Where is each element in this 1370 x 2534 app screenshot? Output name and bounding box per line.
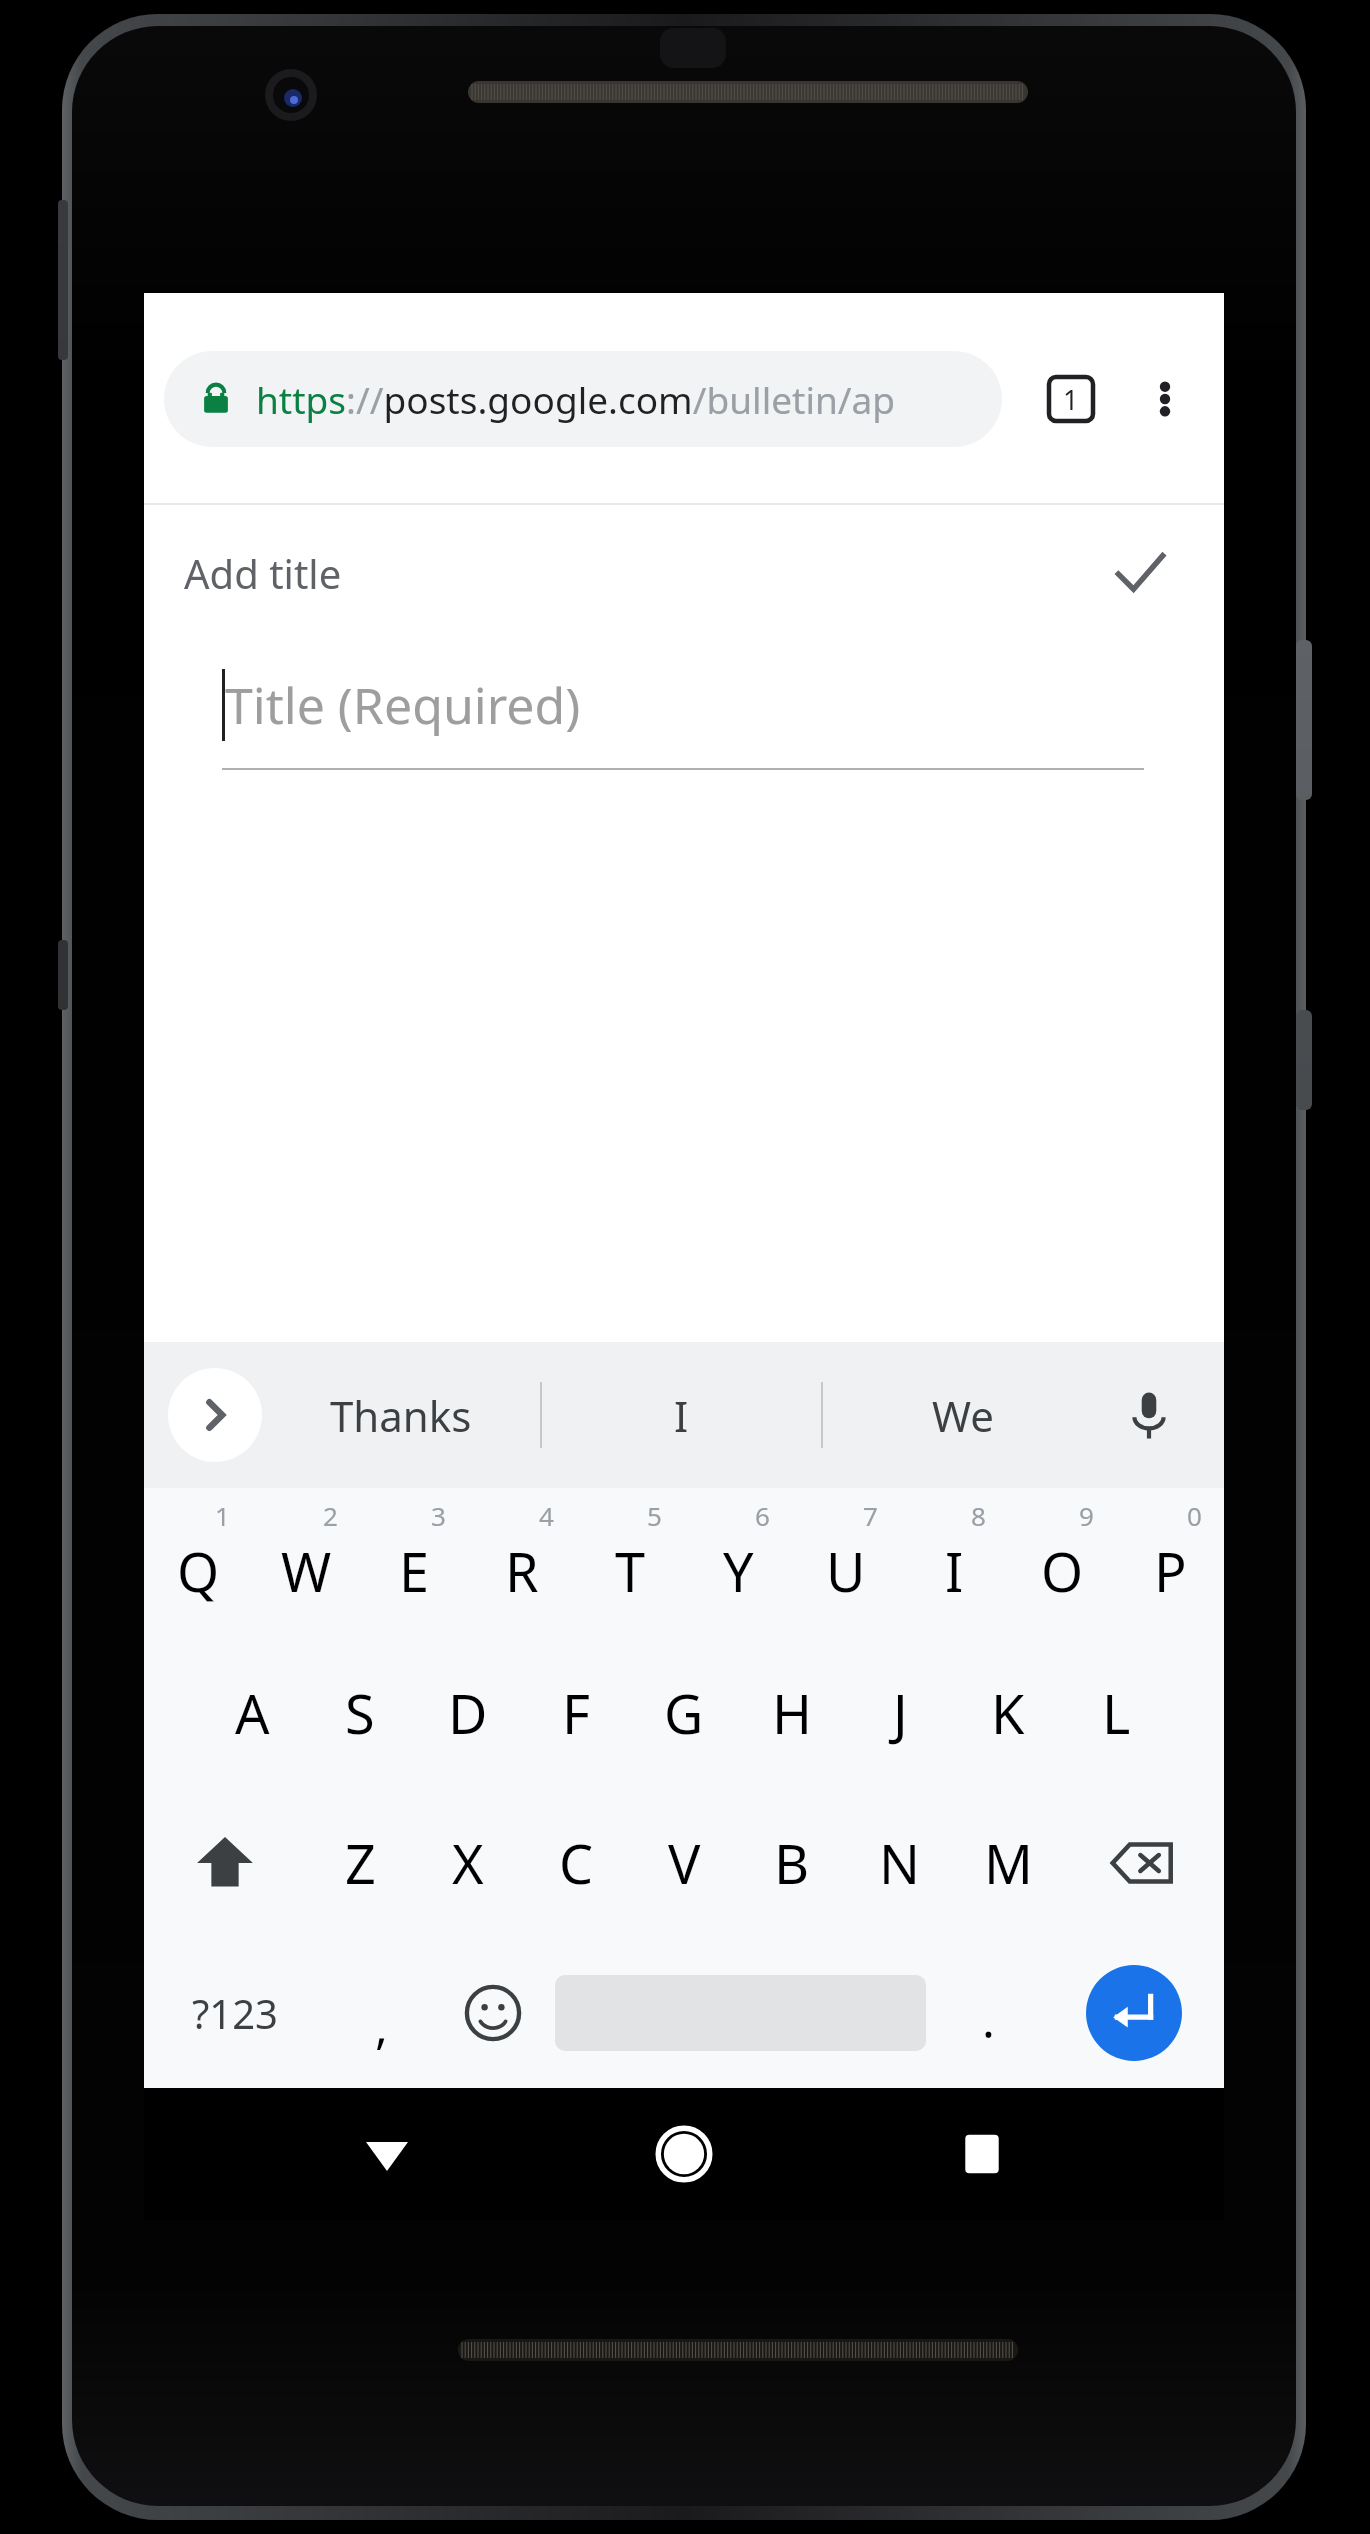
button[interactable]: Y	[684, 1488, 792, 1638]
button[interactable]: I	[900, 1488, 1008, 1638]
staticText: https://posts.google.com/bulletin/ap	[256, 374, 896, 424]
staticText: Q	[177, 1534, 220, 1608]
staticText: ?123	[192, 1986, 278, 2040]
button[interactable]: Thanks	[262, 1342, 540, 1488]
staticText: 9	[1079, 1498, 1094, 1533]
staticText: 6	[755, 1498, 770, 1533]
staticText: C	[559, 1826, 594, 1900]
button[interactable]: G	[630, 1638, 738, 1788]
button[interactable]: Done	[1100, 533, 1180, 613]
button[interactable]: We	[823, 1342, 1102, 1488]
staticText: A	[235, 1676, 270, 1750]
staticText: Add title	[184, 546, 342, 600]
button[interactable]: B	[738, 1788, 846, 1938]
button[interactable]: P	[1116, 1488, 1224, 1638]
staticText: F	[562, 1676, 591, 1750]
button[interactable]: E	[360, 1488, 468, 1638]
staticText: Z	[345, 1826, 376, 1900]
staticText: ,	[375, 1993, 388, 2058]
staticText: W	[281, 1534, 332, 1608]
staticText: J	[893, 1676, 908, 1750]
button[interactable]: ,	[325, 1938, 437, 2088]
button[interactable]: N	[846, 1788, 954, 1938]
staticText: V	[668, 1826, 701, 1900]
button[interactable]: C	[522, 1788, 630, 1938]
staticText: 3	[431, 1498, 446, 1533]
button[interactable]: D	[414, 1638, 522, 1788]
staticText: 0	[1187, 1498, 1202, 1533]
button[interactable]: K	[954, 1638, 1062, 1788]
staticText: We	[932, 1387, 994, 1444]
button[interactable]: More options	[1122, 356, 1208, 442]
button[interactable]	[549, 1938, 932, 2088]
button[interactable]: Back	[332, 2099, 442, 2209]
button[interactable]: U	[792, 1488, 900, 1638]
button[interactable]: Enter	[1044, 1938, 1224, 2088]
button[interactable]: Z	[306, 1788, 414, 1938]
staticText: I	[945, 1534, 964, 1608]
staticText: S	[345, 1676, 375, 1750]
staticText: 7	[863, 1498, 878, 1533]
button[interactable]: Q	[144, 1488, 252, 1638]
staticText: Y	[723, 1534, 754, 1608]
staticText: 4	[539, 1498, 554, 1533]
staticText: 1	[215, 1498, 230, 1533]
staticText: Title (Required)	[225, 671, 581, 739]
staticText: 1	[1063, 381, 1079, 418]
staticText: .	[982, 1987, 995, 2052]
staticText: L	[1102, 1676, 1131, 1750]
staticText: I	[674, 1387, 689, 1444]
button[interactable]: Shift	[144, 1788, 306, 1938]
staticText: 2	[323, 1498, 338, 1533]
button[interactable]: L	[1062, 1638, 1170, 1788]
button[interactable]: O	[1008, 1488, 1116, 1638]
button[interactable]: Title (Required)	[144, 640, 1224, 770]
button[interactable]: M	[954, 1788, 1062, 1938]
staticText: M	[984, 1826, 1033, 1900]
staticText: E	[399, 1534, 430, 1608]
button[interactable]: .	[932, 1938, 1044, 2088]
button[interactable]: V	[630, 1788, 738, 1938]
button[interactable]: F	[522, 1638, 630, 1788]
staticText: K	[991, 1676, 1025, 1750]
button[interactable]: H	[738, 1638, 846, 1788]
button[interactable]: J	[846, 1638, 954, 1788]
staticText: B	[774, 1826, 810, 1900]
button[interactable]: Backspace	[1062, 1788, 1224, 1938]
staticText: X	[452, 1826, 484, 1900]
button[interactable]: Recent apps	[927, 2099, 1037, 2209]
staticText: O	[1041, 1534, 1084, 1608]
button[interactable]: Home	[629, 2099, 739, 2209]
staticText: Thanks	[330, 1387, 472, 1444]
button[interactable]: I	[542, 1342, 821, 1488]
staticText: R	[505, 1534, 539, 1608]
staticText: G	[664, 1676, 704, 1750]
button[interactable]: Voice input	[1102, 1368, 1196, 1462]
button[interactable]: R	[468, 1488, 576, 1638]
button[interactable]: https://posts.google.com/bulletin/ap	[164, 351, 1002, 447]
button[interactable]: ?123	[144, 1938, 325, 2088]
button[interactable]: W	[252, 1488, 360, 1638]
staticText: N	[879, 1826, 921, 1900]
button[interactable]: Expand toolbar	[168, 1368, 262, 1462]
staticText: T	[615, 1534, 646, 1608]
staticText: H	[772, 1676, 813, 1750]
button[interactable]: Tabs, 1 open	[1028, 356, 1114, 442]
button[interactable]: Emoji	[437, 1938, 549, 2088]
staticText: U	[826, 1534, 866, 1608]
button[interactable]: T	[576, 1488, 684, 1638]
button[interactable]: S	[306, 1638, 414, 1788]
staticText: D	[448, 1676, 488, 1750]
staticText: 5	[647, 1498, 662, 1533]
button[interactable]: A	[198, 1638, 306, 1788]
staticText: P	[1154, 1534, 1187, 1608]
button[interactable]: X	[414, 1788, 522, 1938]
staticText: 8	[971, 1498, 986, 1533]
